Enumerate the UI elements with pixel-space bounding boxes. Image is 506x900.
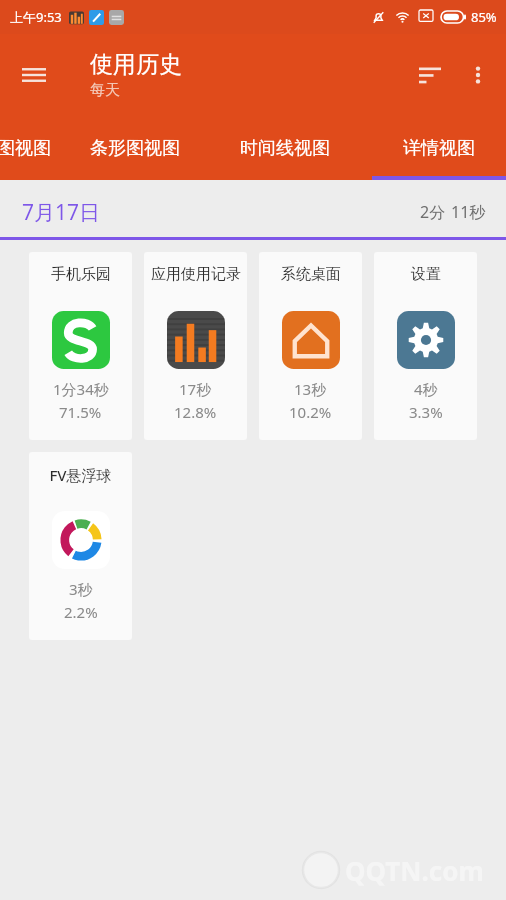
- button[interactable]: FV悬浮球: [29, 452, 132, 640]
- staticText: FV悬浮球: [49, 465, 112, 485]
- button[interactable]: Open navigation drawer: [10, 51, 58, 99]
- button[interactable]: 条形图视图: [72, 116, 198, 180]
- staticText: 2.2%: [64, 602, 98, 622]
- staticText: 2分: [420, 201, 446, 223]
- button[interactable]: Sort: [406, 51, 454, 99]
- button[interactable]: 系统桌面: [259, 252, 362, 440]
- staticText: 3秒: [69, 579, 93, 599]
- staticText: 手机乐园: [51, 265, 111, 284]
- staticText: 详情视图: [403, 137, 475, 160]
- staticText: 13秒: [294, 379, 327, 399]
- staticText: 10.2%: [289, 402, 332, 422]
- staticText: QQTN.com: [345, 853, 484, 888]
- staticText: 85%: [471, 8, 497, 26]
- staticText: 17秒: [179, 379, 212, 399]
- button[interactable]: 饼图视图: [0, 116, 70, 180]
- button[interactable]: 详情视图: [372, 116, 506, 180]
- staticText: 12.8%: [174, 402, 217, 422]
- button[interactable]: 时间线视图: [222, 116, 348, 180]
- staticText: 应用使用记录: [151, 265, 241, 284]
- staticText: 3.3%: [409, 402, 443, 422]
- staticText: 饼图视图: [0, 137, 51, 160]
- button[interactable]: 手机乐园: [29, 252, 132, 440]
- staticText: 1分34秒: [53, 379, 109, 399]
- staticText: 11秒: [451, 201, 486, 223]
- staticText: 71.5%: [59, 402, 102, 422]
- button[interactable]: More options: [454, 51, 502, 99]
- staticText: 上午9:53: [10, 8, 62, 26]
- staticText: 条形图视图: [90, 137, 180, 160]
- button[interactable]: 应用使用记录: [144, 252, 247, 440]
- staticText: 每天: [90, 81, 120, 100]
- staticText: 使用历史: [90, 50, 182, 79]
- button[interactable]: 设置: [374, 252, 477, 440]
- button[interactable]: 7月17日: [0, 184, 506, 240]
- staticText: 7月17日: [22, 198, 101, 227]
- staticText: 系统桌面: [281, 265, 341, 284]
- staticText: 时间线视图: [240, 137, 330, 160]
- staticText: 设置: [411, 265, 441, 284]
- staticText: 4秒: [414, 379, 438, 399]
